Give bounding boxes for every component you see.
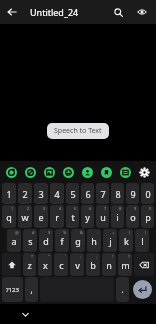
button[interactable]: g — [71, 229, 85, 252]
staticText: ? — [128, 254, 130, 259]
staticText: 9 — [130, 188, 136, 200]
button[interactable]: Search — [106, 0, 130, 24]
button[interactable]: i — [111, 205, 124, 228]
button[interactable]: d — [39, 229, 53, 252]
button[interactable]: z — [23, 253, 36, 276]
staticText: $ — [48, 230, 51, 235]
staticText: w — [21, 211, 29, 223]
button[interactable]: c — [54, 253, 68, 276]
button[interactable]: Tool 5 — [78, 161, 97, 183]
button[interactable]: q — [2, 205, 16, 228]
staticText: 8 — [119, 206, 122, 211]
button[interactable]: Shift — [2, 253, 21, 276]
button[interactable]: Tool 1 — [2, 161, 21, 183]
button[interactable]: n — [102, 253, 116, 276]
button[interactable]: l — [135, 229, 149, 252]
staticText: d — [43, 235, 49, 247]
button[interactable]: k — [119, 229, 133, 252]
button[interactable]: Tool 3 — [40, 161, 59, 183]
button[interactable]: 3 — [34, 183, 48, 204]
button[interactable]: Backspace — [134, 253, 154, 276]
button[interactable]: Tool 6 — [97, 161, 116, 183]
staticText: : — [80, 254, 82, 259]
button[interactable]: Back — [0, 0, 24, 24]
button[interactable]: 0 — [141, 183, 154, 204]
button[interactable]: 6 — [81, 183, 94, 204]
button[interactable]: Settings — [135, 161, 154, 183]
staticText: ) — [145, 230, 147, 235]
button[interactable]: p — [141, 205, 154, 228]
button[interactable]: Tool 2 — [21, 161, 40, 183]
button[interactable]: r — [50, 205, 64, 228]
staticText: 4 — [54, 188, 60, 200]
button[interactable]: Enter — [133, 280, 152, 299]
button[interactable]: w — [18, 205, 32, 228]
button[interactable]: ?123 — [2, 277, 23, 302]
staticText: 4 — [59, 206, 62, 211]
button[interactable]: b — [86, 253, 100, 276]
button[interactable]: x — [38, 253, 52, 276]
staticText: @ — [15, 230, 19, 235]
staticText: s — [28, 235, 33, 247]
staticText: j — [109, 235, 112, 247]
button[interactable]: m — [118, 253, 132, 276]
button[interactable]: 4 — [50, 183, 64, 204]
staticText: # — [32, 230, 35, 235]
staticText: 5 — [70, 188, 76, 200]
staticText: h — [91, 235, 97, 247]
button[interactable]: y — [81, 205, 94, 228]
staticText: u — [100, 211, 106, 223]
staticText: & — [80, 230, 83, 235]
button[interactable]: Hide keyboard — [18, 307, 32, 321]
staticText: 3 — [43, 206, 46, 211]
staticText: ; — [96, 254, 98, 259]
staticText: t — [71, 211, 75, 223]
staticText: 5 — [74, 206, 77, 211]
button[interactable]: 2 — [18, 183, 32, 204]
button[interactable]: 5 — [66, 183, 79, 204]
button[interactable]: v — [70, 253, 84, 276]
button[interactable]: 1 — [2, 183, 16, 204]
button[interactable]: a — [7, 229, 21, 252]
staticText: - — [97, 230, 99, 235]
staticText: 2 — [22, 188, 28, 200]
staticText: g — [75, 235, 81, 247]
staticText: 6 — [89, 206, 92, 211]
button[interactable]: u — [96, 205, 109, 228]
staticText: m — [121, 259, 130, 271]
staticText: " — [48, 254, 50, 259]
button[interactable]: o — [126, 205, 139, 228]
staticText: ' — [65, 254, 66, 259]
staticText: Speech to Text — [54, 126, 102, 136]
staticText: e — [38, 211, 44, 223]
staticText: 1 — [11, 206, 14, 211]
staticText: . — [121, 284, 124, 295]
button[interactable]: t — [66, 205, 79, 228]
button[interactable]: f — [55, 229, 69, 252]
staticText: q — [6, 211, 12, 223]
staticText: * — [31, 254, 34, 259]
staticText: o — [130, 211, 136, 223]
button[interactable]: , — [25, 277, 38, 302]
button[interactable]: . — [116, 277, 129, 302]
staticText: ! — [112, 254, 114, 259]
button[interactable]: s — [23, 229, 37, 252]
button[interactable]: e — [34, 205, 48, 228]
button[interactable]: j — [103, 229, 117, 252]
button[interactable]: Preview — [130, 0, 154, 24]
staticText: 7 — [104, 206, 107, 211]
button[interactable]: 8 — [111, 183, 124, 204]
staticText: c — [59, 259, 64, 271]
button[interactable]: Tool 4 — [59, 161, 78, 183]
staticText: k — [124, 235, 129, 247]
staticText: 6 — [85, 188, 91, 200]
staticText: v — [75, 259, 80, 271]
button[interactable]: 9 — [126, 183, 139, 204]
staticText: , — [30, 284, 33, 295]
button[interactable]: 7 — [96, 183, 109, 204]
staticText: Untitled_24 — [30, 6, 79, 18]
staticText: + — [112, 230, 115, 235]
button[interactable]: Tool 7 — [116, 161, 135, 183]
button[interactable]: h — [87, 229, 101, 252]
